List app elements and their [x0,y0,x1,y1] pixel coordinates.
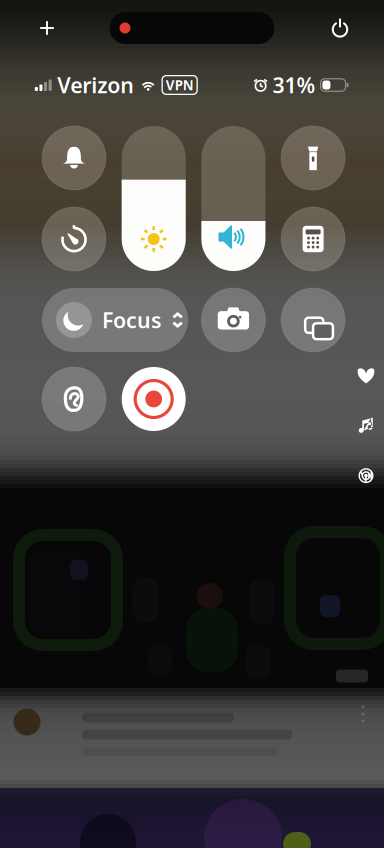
button[interactable]: Connectivity [352,462,380,490]
staticText: Focus [102,306,162,334]
button[interactable]: Home controls [352,362,380,390]
button[interactable]: Volume [201,126,265,271]
button[interactable]: Flashlight [281,126,345,190]
staticText: Verizon [57,71,134,99]
button[interactable]: Camera [201,288,265,352]
button[interactable]: Focus [42,288,188,352]
button[interactable]: Brightness [122,126,186,271]
staticText: VPN [166,76,194,94]
button[interactable]: Silent mode [42,126,106,190]
button[interactable]: Add [27,8,67,48]
button[interactable]: Hearing [42,367,106,431]
button[interactable]: Calculator [281,207,345,271]
button[interactable]: Screen Recording [122,367,186,431]
staticText: 31% [273,71,316,99]
button[interactable]: Screen Mirroring [281,288,345,352]
button[interactable]: Timer [42,207,106,271]
button[interactable]: Power [320,8,360,48]
button[interactable]: Now playing [352,412,380,440]
